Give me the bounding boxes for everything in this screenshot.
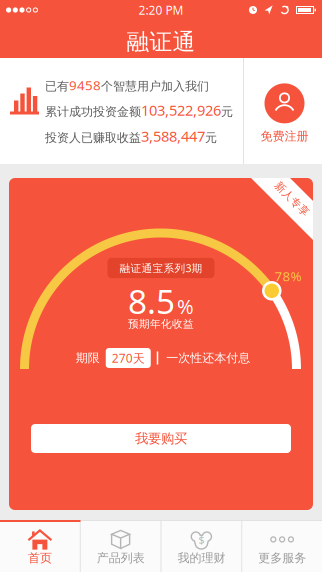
- staticText: 投资人已赚取收益: [45, 130, 141, 145]
- staticText: 我要购买: [135, 430, 187, 447]
- staticText: 8.5: [128, 279, 175, 323]
- staticText: 融证通宝系列3期: [119, 261, 202, 275]
- staticText: 累计成功投资金额: [45, 104, 141, 119]
- staticText: 270天: [112, 350, 145, 366]
- staticText: 2:20 PM: [138, 2, 183, 18]
- staticText: 期限: [76, 351, 100, 365]
- staticText: 更多服务: [258, 551, 306, 565]
- button[interactable]: 产品列表: [81, 520, 161, 572]
- staticText: 个智慧用户加入我们: [101, 79, 209, 93]
- button[interactable]: 我要购买: [31, 424, 291, 453]
- button[interactable]: 更多服务: [242, 520, 322, 572]
- staticText: %: [177, 293, 194, 319]
- staticText: $: [198, 532, 204, 547]
- staticText: 产品列表: [97, 551, 145, 565]
- staticText: 已有: [45, 79, 69, 93]
- staticText: 103,522,926: [141, 100, 221, 120]
- staticText: 我的理财: [177, 551, 225, 565]
- staticText: 首页: [28, 551, 52, 565]
- staticText: 融证通: [126, 28, 195, 56]
- staticText: 一次性还本付息: [166, 351, 250, 365]
- button[interactable]: 免费注册: [244, 81, 322, 141]
- staticText: 78%: [274, 267, 301, 285]
- button[interactable]: 首页: [0, 520, 80, 572]
- staticText: 9458: [69, 76, 101, 94]
- button[interactable]: $: [161, 520, 241, 572]
- staticText: 元: [221, 104, 233, 119]
- staticText: 预期年化收益: [128, 317, 194, 330]
- staticText: 新人专享: [270, 192, 314, 205]
- staticText: 3,588,447: [141, 126, 205, 146]
- staticText: 免费注册: [260, 129, 308, 144]
- staticText: 元: [205, 130, 217, 145]
